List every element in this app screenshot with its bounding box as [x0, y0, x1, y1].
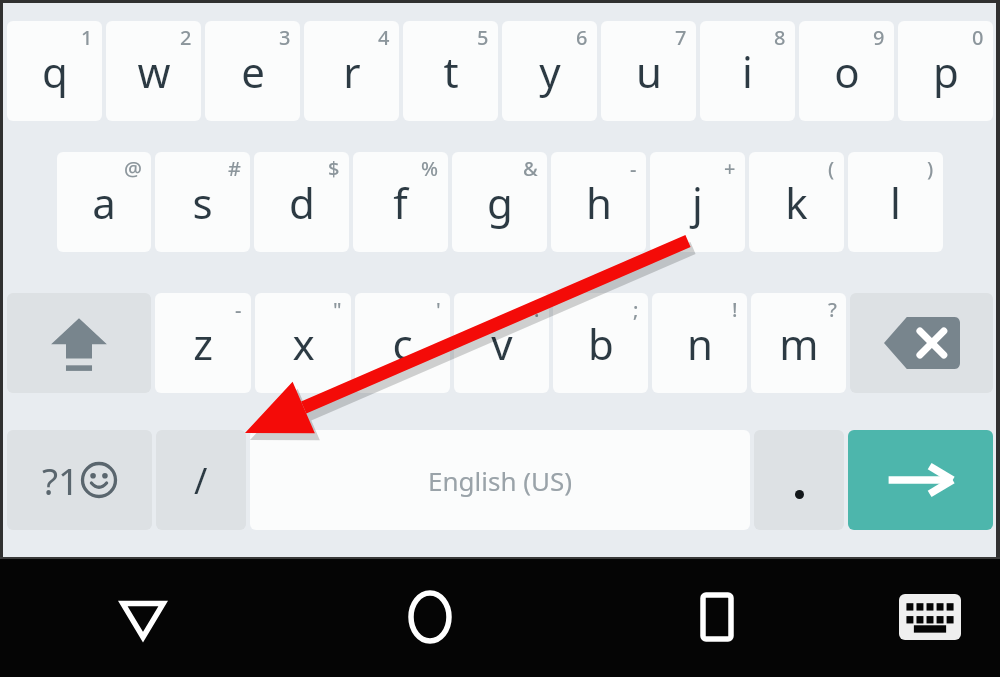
button[interactable]: Recent apps [573, 557, 860, 677]
staticText: ' [436, 296, 441, 323]
button[interactable]: h [551, 152, 646, 252]
staticText: 3 [279, 24, 291, 51]
button[interactable]: n [652, 293, 747, 393]
button[interactable]: s [155, 152, 250, 252]
staticText: m [779, 315, 819, 372]
button[interactable]: l [848, 152, 943, 252]
staticText: w [137, 43, 171, 100]
staticText: p [933, 43, 959, 100]
button[interactable]: v [454, 293, 549, 393]
staticText: 5 [477, 24, 489, 51]
staticText: & [523, 155, 538, 182]
button[interactable]: k [749, 152, 844, 252]
button[interactable]: Shift [7, 293, 151, 393]
staticText: - [630, 155, 637, 182]
button[interactable]: r [304, 21, 399, 121]
button[interactable]: u [601, 21, 696, 121]
staticText: 9 [873, 24, 885, 51]
button[interactable]: i [700, 21, 795, 121]
button[interactable]: Home [286, 557, 573, 677]
staticText: @ [124, 155, 142, 182]
staticText: r [343, 43, 361, 100]
button[interactable]: p [898, 21, 993, 121]
staticText: ! [732, 296, 738, 323]
staticText: n [687, 315, 713, 372]
staticText: l [890, 174, 901, 231]
staticText: c [392, 315, 413, 372]
button[interactable]: q [7, 21, 102, 121]
staticText: u [636, 43, 662, 100]
staticText: 4 [378, 24, 390, 51]
button[interactable]: English (US) [250, 430, 750, 530]
staticText: " [333, 296, 342, 323]
staticText: q [42, 43, 68, 100]
button[interactable]: x [255, 293, 351, 393]
staticText: 7 [675, 24, 687, 51]
button[interactable]: e [205, 21, 300, 121]
button[interactable]: Symbols and emoji [7, 430, 152, 530]
staticText: b [588, 315, 614, 372]
button[interactable]: a [57, 152, 151, 252]
button[interactable]: g [452, 152, 547, 252]
staticText: k [785, 174, 808, 231]
staticText: f [393, 174, 408, 231]
button[interactable]: d [254, 152, 349, 252]
staticText: % [421, 155, 439, 182]
button[interactable]: Backspace [850, 293, 993, 393]
staticText: . [534, 296, 540, 323]
staticText: z [193, 315, 213, 372]
staticText: o [834, 43, 860, 100]
staticText: ?1 [42, 455, 80, 505]
button[interactable]: Back [0, 557, 286, 677]
button[interactable]: Period [754, 430, 844, 530]
staticText: ) [927, 155, 934, 182]
staticText: d [289, 174, 315, 231]
button[interactable]: z [155, 293, 251, 393]
staticText: English (US) [428, 463, 573, 498]
staticText: t [443, 43, 459, 100]
button[interactable]: / [156, 430, 246, 530]
staticText: y [539, 43, 561, 100]
staticText: $ [328, 155, 340, 182]
button[interactable]: Enter [848, 430, 993, 530]
staticText: # [228, 155, 241, 182]
staticText: e [241, 43, 265, 100]
staticText: ; [633, 296, 639, 323]
staticText: 6 [576, 24, 588, 51]
staticText: a [92, 174, 116, 231]
button[interactable]: Switch keyboard [860, 557, 1000, 677]
staticText: g [487, 174, 513, 231]
button[interactable]: f [353, 152, 448, 252]
staticText: j [692, 174, 703, 231]
button[interactable]: b [553, 293, 648, 393]
staticText: s [192, 174, 213, 231]
staticText: h [586, 174, 612, 231]
staticText: i [742, 43, 753, 100]
button[interactable]: y [502, 21, 597, 121]
button[interactable]: j [650, 152, 745, 252]
staticText: 0 [972, 24, 984, 51]
button[interactable]: c [355, 293, 450, 393]
button[interactable]: m [751, 293, 846, 393]
staticText: ( [828, 155, 835, 182]
button[interactable]: t [403, 21, 498, 121]
staticText: 8 [774, 24, 786, 51]
staticText: x [292, 315, 315, 372]
button[interactable]: o [799, 21, 894, 121]
staticText: v [491, 315, 513, 372]
staticText: - [235, 296, 242, 323]
staticText: 1 [81, 24, 93, 51]
staticText: 2 [180, 24, 192, 51]
staticText: / [194, 456, 208, 505]
button[interactable]: w [106, 21, 201, 121]
staticText: ? [828, 296, 837, 323]
staticText: + [724, 155, 736, 182]
